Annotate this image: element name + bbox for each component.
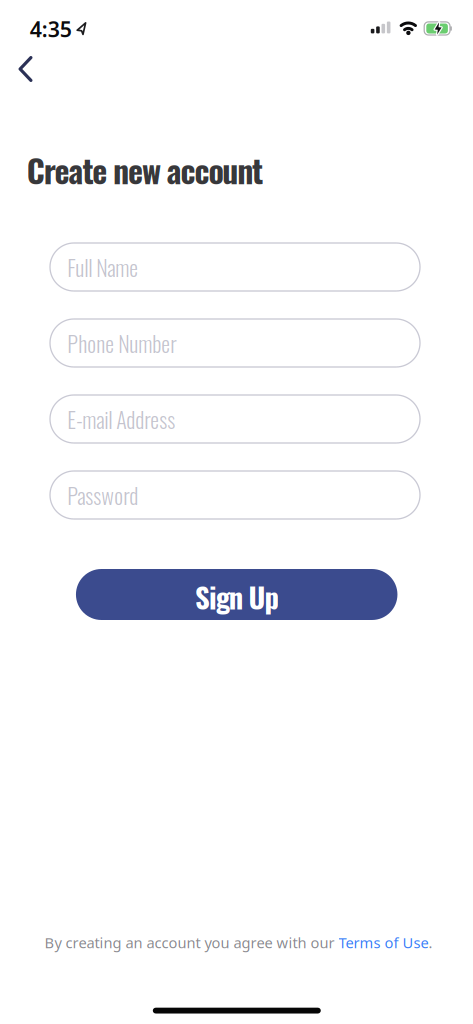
staticText: Create new account xyxy=(27,146,263,193)
staticText: By creating an account you agree with ou… xyxy=(44,933,338,952)
button[interactable]: Full Name xyxy=(50,243,420,291)
staticText: Phone Number xyxy=(67,327,177,359)
button[interactable]: Sign Up xyxy=(76,569,397,620)
staticText: 4:35 xyxy=(30,15,72,43)
staticText: Terms of Use xyxy=(338,933,428,952)
staticText: . xyxy=(428,933,432,952)
button[interactable]: Back xyxy=(3,47,47,91)
button[interactable]: E-mail Address xyxy=(50,395,420,443)
staticText: Full Name xyxy=(67,251,138,283)
button[interactable]: Terms of Use xyxy=(338,933,428,952)
button[interactable]: Password xyxy=(50,471,420,519)
staticText: Password xyxy=(67,479,138,511)
staticText: E-mail Address xyxy=(67,403,175,435)
staticText: Sign Up xyxy=(195,575,278,618)
button[interactable]: Phone Number xyxy=(50,319,420,367)
